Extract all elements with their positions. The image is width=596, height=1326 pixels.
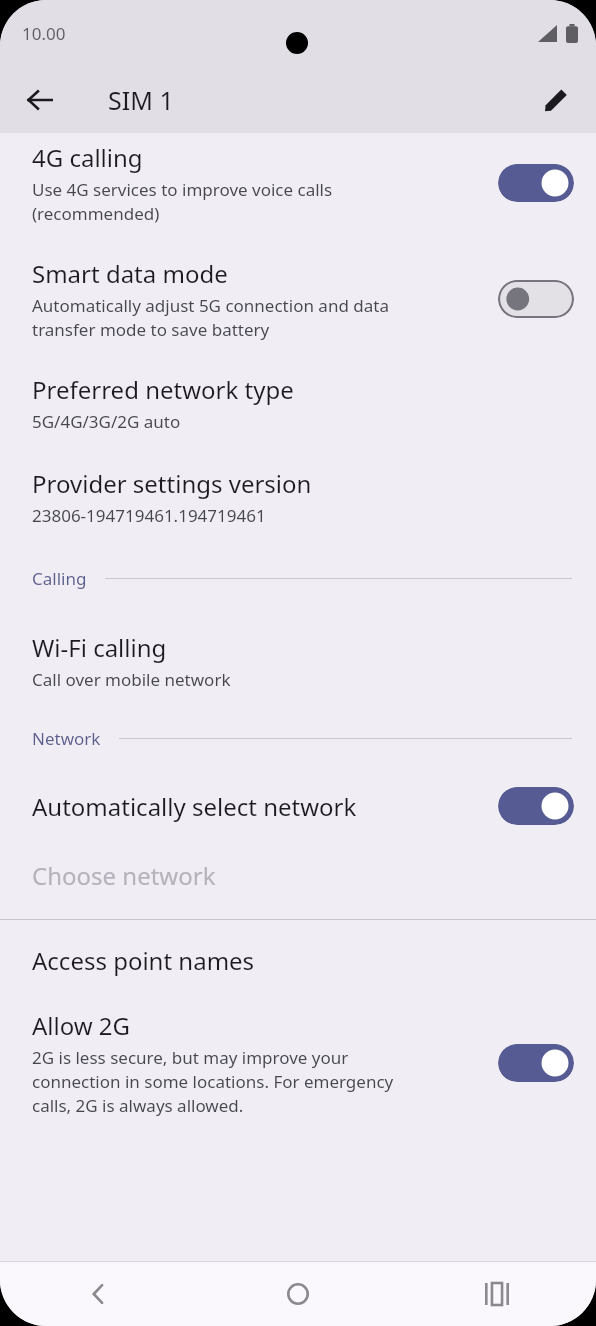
- staticText: Preferred network type: [32, 373, 294, 406]
- staticText: 10.00: [22, 22, 66, 45]
- button[interactable]: Automatically select network: [0, 785, 596, 827]
- button[interactable]: Back: [0, 1262, 198, 1326]
- staticText: Automatically select network: [32, 790, 357, 823]
- button[interactable]: Back: [12, 72, 68, 128]
- button[interactable]: Preferred network type: [0, 371, 596, 435]
- button[interactable]: 4G calling: [0, 139, 596, 227]
- staticText: Access point names: [32, 944, 255, 977]
- button[interactable]: Home: [198, 1262, 397, 1326]
- staticText: Wi-Fi calling: [32, 631, 167, 664]
- button[interactable]: Provider settings version: [0, 465, 596, 529]
- button[interactable]: Off: [498, 280, 574, 318]
- staticText: Allow 2G: [32, 1009, 131, 1042]
- button[interactable]: Allow 2G: [0, 1007, 596, 1119]
- button[interactable]: Recent apps: [397, 1262, 596, 1326]
- staticText: 23806-194719461.194719461: [32, 504, 266, 527]
- staticText: 5G/4G/3G/2G auto: [32, 410, 181, 433]
- staticText: Smart data mode: [32, 257, 228, 290]
- staticText: Choose network: [32, 859, 216, 892]
- staticText: SIM 1: [108, 83, 174, 117]
- staticText: Network: [32, 727, 101, 750]
- staticText: 4G calling: [32, 141, 143, 174]
- staticText: Use 4G services to improve voice calls (…: [32, 178, 333, 225]
- staticText: Provider settings version: [32, 467, 312, 500]
- button[interactable]: Access point names: [0, 942, 596, 979]
- staticText: 2G is less secure, but may improve your …: [32, 1046, 394, 1117]
- button[interactable]: Choose network: [0, 849, 596, 901]
- button[interactable]: On: [498, 1044, 574, 1082]
- staticText: Automatically adjust 5G connection and d…: [32, 294, 389, 341]
- button[interactable]: On: [498, 164, 574, 202]
- staticText: Calling: [32, 567, 87, 590]
- button[interactable]: On: [498, 787, 574, 825]
- button[interactable]: Smart data mode: [0, 255, 596, 343]
- button[interactable]: Edit: [528, 72, 584, 128]
- button[interactable]: Wi-Fi calling: [0, 629, 596, 693]
- staticText: Call over mobile network: [32, 668, 231, 691]
